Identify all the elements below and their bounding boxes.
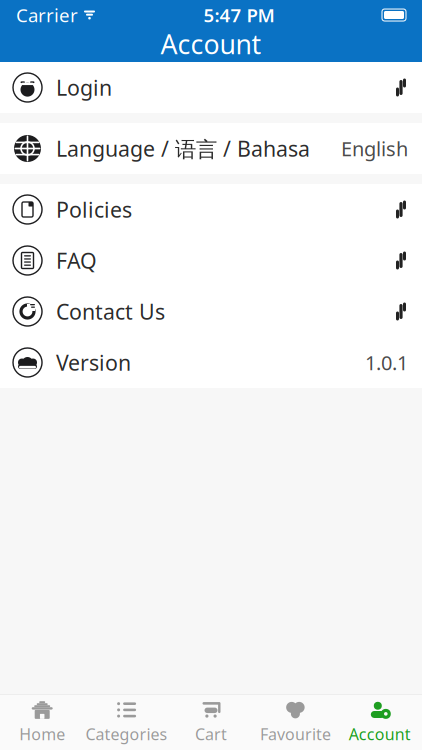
button[interactable]: Version xyxy=(0,337,422,388)
staticText: Home xyxy=(19,723,65,745)
staticText: Contact Us xyxy=(56,297,165,326)
button[interactable]: Contact Us xyxy=(0,286,422,337)
button[interactable]: Policies xyxy=(0,184,422,235)
button[interactable]: Login xyxy=(0,62,422,113)
staticText: 1.0.1 xyxy=(365,349,408,376)
staticText: 5:47 PM xyxy=(203,3,274,27)
staticText: Account xyxy=(160,26,261,62)
staticText: FAQ xyxy=(56,246,97,275)
button[interactable]: Language / 语言 / Bahasa xyxy=(0,123,422,174)
staticText: Favourite xyxy=(260,723,331,745)
button[interactable]: FAQ xyxy=(0,235,422,286)
staticText: Login xyxy=(56,73,112,102)
staticText: Carrier xyxy=(16,3,78,27)
button[interactable]: Account xyxy=(338,696,422,748)
staticText: Language / 语言 / Bahasa xyxy=(56,134,310,163)
staticText: Categories xyxy=(86,723,168,745)
button[interactable]: Home xyxy=(0,696,84,748)
staticText: Policies xyxy=(56,195,132,224)
staticText: Version xyxy=(56,348,131,377)
button[interactable]: Categories xyxy=(84,696,169,748)
staticText: English xyxy=(341,135,408,162)
button[interactable]: Cart xyxy=(169,696,253,748)
button[interactable]: Favourite xyxy=(253,696,338,748)
staticText: Cart xyxy=(195,723,227,745)
staticText: Account xyxy=(349,723,411,745)
